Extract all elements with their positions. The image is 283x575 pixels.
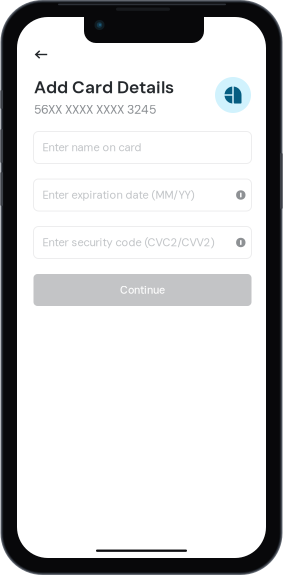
staticText: Enter name on card — [42, 140, 141, 155]
button[interactable]: Continue — [33, 274, 251, 306]
staticText: 56XX XXXX XXXX 3245 — [34, 102, 156, 118]
button[interactable]: Enter name on card — [33, 131, 251, 163]
staticText: Enter expiration date (MM/YY) — [42, 188, 194, 202]
button[interactable]: Enter security code (CVC2/CVV2) — [33, 226, 251, 258]
staticText: Continue — [120, 283, 165, 297]
staticText: Enter security code (CVC2/CVV2) — [42, 235, 214, 250]
button[interactable]: Back — [31, 45, 51, 64]
button[interactable]: Enter expiration date (MM/YY) — [33, 179, 251, 211]
staticText: Add Card Details — [34, 76, 174, 99]
